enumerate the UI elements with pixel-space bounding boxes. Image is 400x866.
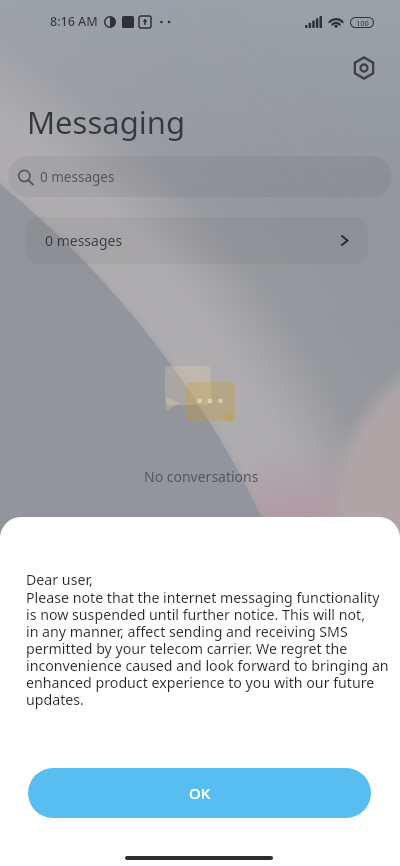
button[interactable]: 0 messages bbox=[25, 217, 368, 264]
staticText: 0 messages bbox=[45, 231, 123, 250]
button[interactable]: OK bbox=[28, 768, 371, 818]
staticText: 8:16 AM bbox=[50, 13, 98, 30]
button[interactable]: Settings bbox=[344, 48, 384, 88]
staticText: 0 messages bbox=[40, 168, 115, 186]
staticText: No conversations bbox=[144, 467, 259, 486]
staticText: Messaging bbox=[27, 101, 185, 143]
staticText: Dear user, Please note that the internet… bbox=[26, 570, 394, 709]
staticText: OK bbox=[189, 783, 211, 803]
button[interactable]: 0 messages bbox=[8, 156, 392, 197]
staticText: 100 bbox=[356, 18, 369, 27]
